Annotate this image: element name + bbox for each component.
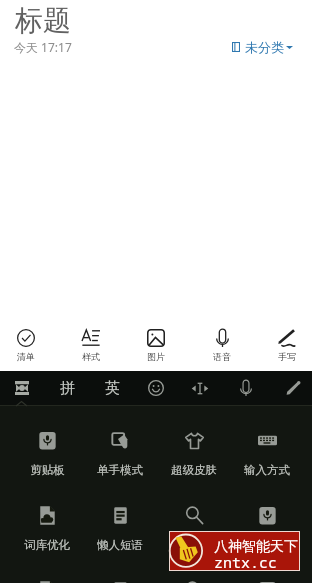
button[interactable]: Voice input xyxy=(225,371,267,405)
button[interactable]: 图片 xyxy=(130,323,182,365)
button[interactable]: Keyboard tool xyxy=(15,574,79,583)
button[interactable]: Keyboard tool xyxy=(162,499,226,551)
button[interactable]: Keyboard tool xyxy=(235,574,299,583)
staticText: 手写 xyxy=(278,351,296,362)
button[interactable]: 单手模式 xyxy=(88,424,152,476)
button[interactable]: 剪贴板 xyxy=(15,424,79,476)
staticText: 样式 xyxy=(82,351,100,362)
button[interactable]: 懒人短语 xyxy=(88,499,152,551)
staticText: 超级皮肤 xyxy=(171,463,217,476)
button[interactable]: 未分类 xyxy=(232,38,293,55)
staticText: 单手模式 xyxy=(97,463,143,476)
staticText: 拼 xyxy=(60,379,75,398)
button[interactable]: 样式 xyxy=(65,323,117,365)
button[interactable]: Keyboard tool xyxy=(162,574,226,583)
staticText: zntx.cc xyxy=(214,552,278,572)
button[interactable]: 超级皮肤 xyxy=(162,424,226,476)
staticText: 未分类 xyxy=(245,39,284,55)
button[interactable]: Handwriting xyxy=(272,371,312,405)
button[interactable]: Keyboard tool xyxy=(235,499,299,551)
staticText: 清单 xyxy=(17,351,35,362)
button[interactable]: 语音 xyxy=(196,323,248,365)
button[interactable]: 手写 xyxy=(261,323,312,365)
staticText: 语音 xyxy=(213,351,231,362)
staticText: 懒人短语 xyxy=(97,538,143,551)
staticText: 八神智能天下 xyxy=(214,538,298,556)
button[interactable]: Emoji xyxy=(135,371,177,405)
button[interactable]: Move cursor xyxy=(179,371,221,405)
button[interactable]: Pinyin xyxy=(46,371,88,405)
button[interactable]: 输入方式 xyxy=(235,424,299,476)
staticText: 图片 xyxy=(147,351,165,362)
staticText: 剪贴板 xyxy=(30,463,65,476)
button[interactable]: Keyboard tool xyxy=(88,574,152,583)
staticText: 英 xyxy=(105,379,120,398)
button[interactable]: Input method logo xyxy=(1,371,43,405)
staticText: 输入方式 xyxy=(244,463,290,476)
button[interactable]: 标题 xyxy=(15,3,71,38)
button[interactable]: English xyxy=(91,371,133,405)
staticText: 词库优化 xyxy=(24,538,70,551)
button[interactable]: 词库优化 xyxy=(15,499,79,551)
button[interactable]: 清单 xyxy=(0,323,52,365)
staticText: 今天 17:17 xyxy=(14,39,72,55)
